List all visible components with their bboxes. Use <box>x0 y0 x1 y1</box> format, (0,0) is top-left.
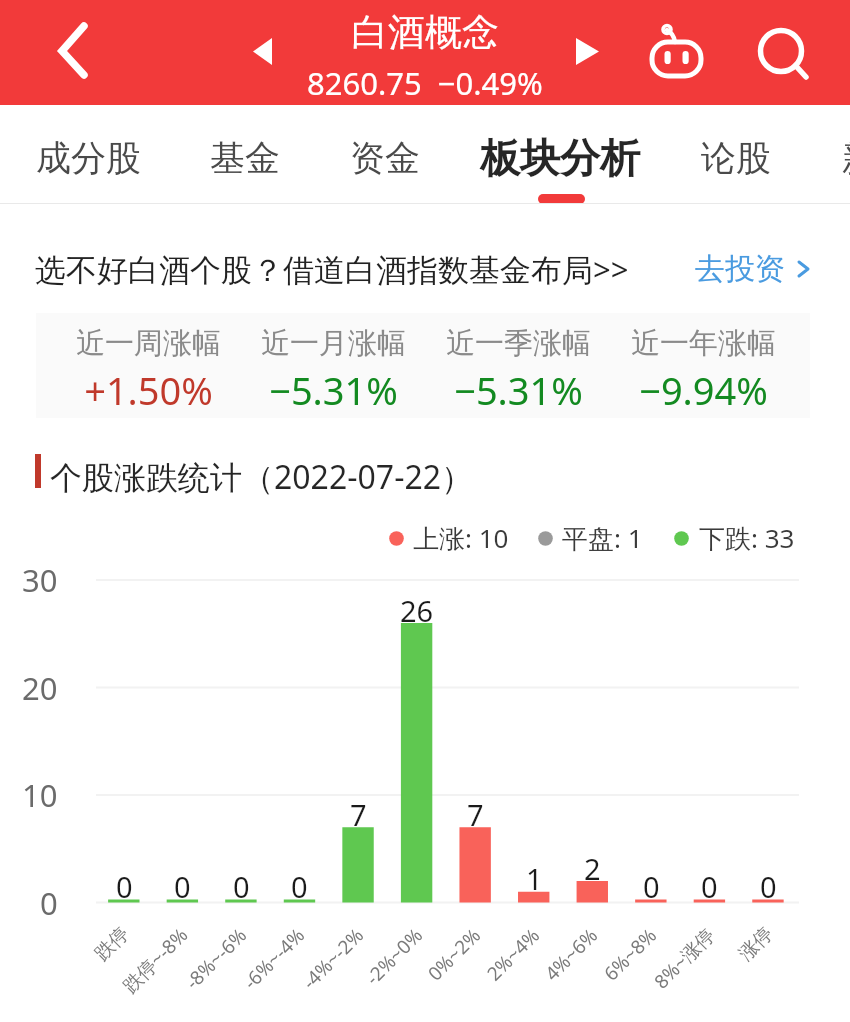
staticText: 20 <box>22 667 58 709</box>
staticText: 0 <box>701 867 718 906</box>
button[interactable]: 选不好白酒个股？借道白酒指数基金布局>> <box>0 226 850 312</box>
staticText: 10 <box>22 774 58 816</box>
button[interactable]: Search <box>748 18 818 88</box>
staticText: 2%~4% <box>481 922 545 986</box>
staticText: 跌停~-8% <box>117 922 193 998</box>
staticText: 下跌: 33 <box>699 520 795 556</box>
staticText: -6%~-4% <box>238 922 310 995</box>
staticText: 4%~6% <box>539 922 603 986</box>
staticText: 0 <box>116 867 133 906</box>
staticText: −5.31% <box>454 364 583 405</box>
staticText: 涨停 <box>734 922 778 966</box>
staticText: 0 <box>760 867 777 906</box>
staticText: +1.50% <box>84 364 213 405</box>
staticText: 论股 <box>701 136 771 180</box>
staticText: 0 <box>40 882 58 924</box>
staticText: 26 <box>400 591 434 630</box>
button[interactable]: Next index <box>568 30 604 66</box>
button[interactable]: Back <box>40 14 114 88</box>
staticText: 基金 <box>210 136 280 180</box>
button[interactable]: Previous index <box>245 30 281 66</box>
staticText: 0%~2% <box>422 922 486 986</box>
staticText: 7 <box>350 795 367 834</box>
staticText: 平盘: 1 <box>562 520 643 556</box>
staticText: 7 <box>467 795 484 834</box>
staticText: 近一季涨幅 <box>446 325 591 362</box>
staticText: 跌停 <box>90 922 134 966</box>
staticText: 6%~8% <box>598 922 662 986</box>
staticText: 1 <box>526 859 543 898</box>
staticText: 近一月涨幅 <box>261 325 406 362</box>
staticText: 30 <box>22 559 58 601</box>
staticText: 板块分析 <box>480 133 640 183</box>
staticText: 近一周涨幅 <box>76 325 221 362</box>
staticText: -4%~-2% <box>297 922 369 995</box>
staticText: -8%~-6% <box>180 922 252 995</box>
staticText: 资金 <box>350 136 420 180</box>
staticText: 成分股 <box>36 136 141 180</box>
button[interactable]: 资金 <box>325 110 445 205</box>
staticText: 8260.75 −0.49% <box>307 62 543 104</box>
staticText: 0 <box>291 867 308 906</box>
staticText: 2 <box>584 849 601 888</box>
button[interactable]: 基金 <box>185 110 305 205</box>
staticText: 选不好白酒个股？借道白酒指数基金布局>> <box>35 248 629 290</box>
staticText: 白酒概念 <box>351 9 499 56</box>
staticText: 8%~涨停 <box>648 922 720 994</box>
button[interactable]: 板块分析 <box>455 110 665 205</box>
staticText: -2%~0% <box>360 922 428 991</box>
staticText: 个股涨跌统计（2022-07-22） <box>50 455 474 499</box>
button[interactable]: 成分股 <box>11 110 166 205</box>
staticText: 近一年涨幅 <box>631 325 776 362</box>
staticText: 去投资 <box>695 250 785 288</box>
staticText: 新股 <box>842 136 850 180</box>
button[interactable]: AI assistant <box>640 18 714 92</box>
staticText: −5.31% <box>269 364 398 405</box>
staticText: 0 <box>233 867 250 906</box>
button[interactable]: 论股 <box>676 110 796 205</box>
button[interactable]: 新股 <box>817 110 850 205</box>
staticText: −9.94% <box>639 364 768 405</box>
staticText: 0 <box>643 867 660 906</box>
staticText: 上涨: 10 <box>413 520 509 556</box>
staticText: 0 <box>174 867 191 906</box>
